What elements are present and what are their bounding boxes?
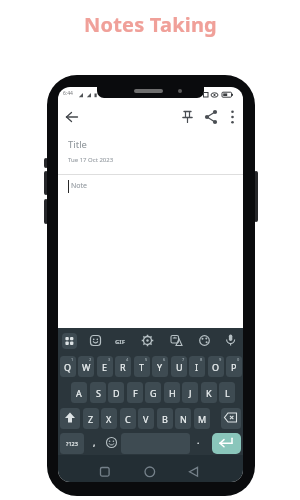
button[interactable]: T	[134, 356, 150, 377]
staticText: K	[206, 387, 212, 399]
staticText: Note	[71, 181, 88, 191]
button[interactable]	[89, 334, 102, 347]
button[interactable]: R	[115, 356, 131, 377]
button[interactable]	[202, 108, 220, 126]
staticText: A	[76, 387, 82, 399]
staticText: 2	[89, 357, 92, 362]
button[interactable]: K	[201, 382, 217, 403]
button[interactable]: M	[194, 408, 210, 429]
button[interactable]: ,	[93, 436, 96, 448]
staticText: B	[162, 413, 168, 425]
staticText: Notes Taking	[84, 11, 217, 38]
staticText: Title	[68, 138, 87, 151]
staticText: W	[82, 361, 91, 373]
staticText: L	[225, 387, 230, 399]
button[interactable]	[198, 334, 211, 347]
button[interactable]	[179, 108, 196, 126]
button[interactable]	[141, 466, 159, 482]
staticText: Y	[157, 361, 163, 373]
staticText: 8	[200, 357, 203, 362]
button[interactable]: Q	[60, 356, 76, 377]
staticText: T	[139, 361, 145, 373]
staticText: 4	[126, 357, 129, 362]
button[interactable]: P	[226, 356, 242, 377]
staticText: H	[169, 387, 176, 399]
button[interactable]: ?123	[60, 433, 84, 454]
button[interactable]: H	[164, 382, 180, 403]
staticText: Z	[88, 413, 94, 425]
button[interactable]: .	[197, 434, 200, 446]
button[interactable]: Title	[58, 134, 243, 174]
button[interactable]	[141, 334, 154, 347]
staticText: S	[96, 387, 101, 399]
staticText: ?123	[66, 440, 78, 447]
staticText: I	[195, 361, 199, 373]
staticText: R	[120, 361, 126, 373]
button[interactable]	[105, 436, 118, 449]
button[interactable]	[224, 108, 241, 126]
button[interactable]: N	[175, 408, 191, 429]
staticText: D	[113, 387, 120, 399]
staticText: F	[133, 387, 138, 399]
button[interactable]: O	[208, 356, 224, 377]
button[interactable]	[224, 333, 237, 348]
button[interactable]	[170, 334, 183, 347]
staticText: 6	[163, 357, 166, 362]
staticText: Q	[64, 361, 72, 373]
button[interactable]: X	[101, 408, 117, 429]
staticText: U	[176, 361, 183, 373]
staticText: O	[212, 361, 220, 373]
staticText: 9	[219, 357, 222, 362]
button[interactable]: Z	[83, 408, 99, 429]
button[interactable]: V	[138, 408, 154, 429]
staticText: G	[150, 387, 157, 399]
staticText: 0	[237, 357, 240, 362]
staticText: 1	[71, 357, 74, 362]
button[interactable]	[96, 466, 114, 482]
staticText: V	[143, 413, 149, 425]
button[interactable]: E	[97, 356, 113, 377]
button[interactable]	[62, 108, 82, 126]
button[interactable]: D	[108, 382, 124, 403]
button[interactable]	[212, 433, 241, 454]
staticText: 3	[108, 357, 111, 362]
button[interactable]: W	[78, 356, 94, 377]
staticText: Tue 17 Oct 2023	[68, 156, 114, 164]
button[interactable]	[185, 466, 203, 482]
button[interactable]: Y	[152, 356, 168, 377]
staticText: J	[189, 387, 192, 399]
staticText: M	[198, 413, 207, 425]
staticText: 7	[182, 357, 185, 362]
staticText: 6:44	[63, 90, 73, 97]
staticText: X	[106, 413, 112, 425]
staticText: 5	[145, 357, 148, 362]
button[interactable]: C	[120, 408, 136, 429]
button[interactable]	[60, 408, 80, 429]
button[interactable]	[221, 408, 241, 429]
staticText: E	[102, 361, 108, 373]
button[interactable]: S	[90, 382, 106, 403]
button[interactable]: J	[182, 382, 198, 403]
button[interactable]: F	[127, 382, 143, 403]
button[interactable]	[62, 333, 77, 349]
button[interactable]: B	[157, 408, 173, 429]
button[interactable]: A	[71, 382, 87, 403]
button[interactable]: G	[145, 382, 161, 403]
staticText: P	[231, 361, 237, 373]
button[interactable]: Note	[58, 175, 243, 205]
staticText: C	[125, 413, 131, 425]
button[interactable]: I	[189, 356, 205, 377]
button[interactable]: U	[171, 356, 187, 377]
button[interactable]: L	[219, 382, 235, 403]
button[interactable]: GIF	[115, 338, 125, 346]
staticText: N	[180, 413, 187, 425]
